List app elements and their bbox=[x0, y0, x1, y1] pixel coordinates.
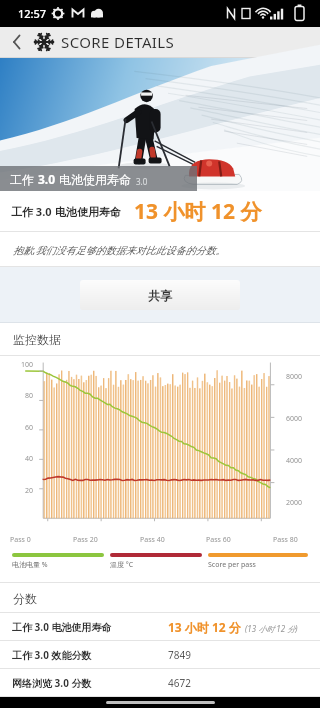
staticText: 40 bbox=[25, 454, 34, 464]
button[interactable]: 工作 3.0 电池使用寿命 bbox=[0, 613, 320, 641]
button[interactable]: Back bbox=[0, 27, 34, 57]
staticText: 4672 bbox=[168, 676, 191, 690]
staticText: 3.0 bbox=[136, 176, 148, 187]
staticText: 电池电量 % bbox=[12, 560, 48, 570]
staticText: 13 小时 12 分 bbox=[168, 619, 241, 635]
staticText: 12:57 bbox=[18, 6, 47, 21]
staticText: (13 小时 12 分) bbox=[245, 623, 298, 634]
staticText: 分数 bbox=[13, 591, 37, 606]
staticText: 20 bbox=[25, 486, 34, 496]
staticText: Pass 80 bbox=[273, 535, 298, 545]
staticText: 13 小时 12 分 bbox=[134, 197, 262, 226]
staticText: 2000 bbox=[286, 498, 303, 508]
button[interactable]: 工作 3.0 效能分数 bbox=[0, 641, 320, 669]
staticText: 7849 bbox=[168, 648, 191, 662]
staticText: Score per pass bbox=[208, 560, 256, 570]
staticText: 温度 °C bbox=[110, 560, 134, 570]
staticText: Pass 20 bbox=[73, 535, 98, 545]
staticText: Pass 60 bbox=[206, 535, 231, 545]
staticText: 抱歉,我们没有足够的数据来对比此设备的分数。 bbox=[13, 243, 226, 257]
staticText: 电池使用寿命 bbox=[56, 171, 132, 187]
staticText: 80 bbox=[25, 391, 34, 401]
staticText: 工作 3.0 效能分数 bbox=[12, 648, 92, 662]
staticText: 4000 bbox=[286, 456, 303, 466]
staticText: 监控数据 bbox=[13, 332, 61, 347]
staticText: 6000 bbox=[286, 414, 303, 424]
staticText: 工作 3.0 电池使用寿命 bbox=[12, 620, 112, 634]
button[interactable]: 共享 bbox=[80, 280, 240, 310]
staticText: 工作 bbox=[11, 205, 33, 219]
staticText: 60 bbox=[25, 423, 34, 433]
staticText: 8000 bbox=[286, 372, 303, 382]
staticText: 工作 bbox=[10, 171, 38, 187]
staticText: 共享 bbox=[148, 288, 172, 303]
staticText: 电池使用寿命 bbox=[55, 205, 121, 219]
button[interactable]: 网络浏览 3.0 分数 bbox=[0, 669, 320, 697]
staticText: Pass 0 bbox=[10, 535, 31, 545]
staticText: SCORE DETAILS bbox=[61, 32, 175, 52]
staticText: 网络浏览 3.0 分数 bbox=[12, 676, 92, 690]
staticText: 3.0 bbox=[33, 204, 55, 219]
staticText: 100 bbox=[21, 360, 34, 370]
staticText: Pass 40 bbox=[140, 535, 165, 545]
staticText: 3.0 bbox=[38, 171, 56, 187]
